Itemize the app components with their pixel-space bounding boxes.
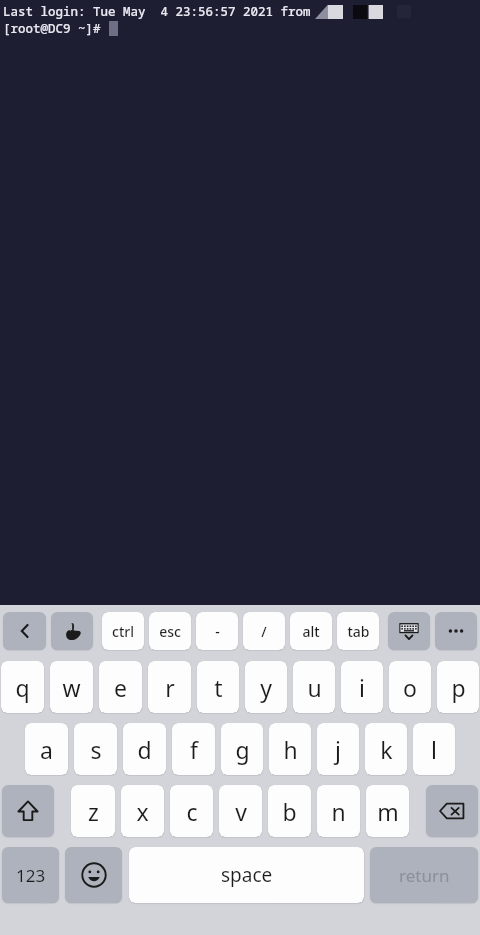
staticText: t <box>214 672 223 703</box>
staticText: w <box>62 672 81 703</box>
staticText: alt <box>302 622 320 641</box>
button[interactable]: d <box>123 723 166 775</box>
button[interactable]: v <box>219 785 262 837</box>
staticText: y <box>260 672 272 703</box>
staticText: i <box>359 672 365 703</box>
staticText: k <box>380 734 393 765</box>
button[interactable]: esc <box>149 612 191 650</box>
button[interactable]: r <box>148 661 191 713</box>
staticText: o <box>403 672 417 703</box>
staticText: return <box>399 864 450 887</box>
staticText: e <box>114 672 127 703</box>
button[interactable]: l <box>413 723 455 775</box>
button[interactable]: Back <box>3 612 46 650</box>
staticText: space <box>221 862 273 888</box>
staticText: [root@DC9 ~]# <box>3 20 109 37</box>
button[interactable]: space <box>129 847 364 903</box>
button[interactable]: Hide keyboard <box>388 612 430 650</box>
staticText: a <box>40 734 53 765</box>
staticText: j <box>335 734 341 765</box>
button[interactable]: h <box>269 723 311 775</box>
button[interactable]: t <box>197 661 239 713</box>
staticText: n <box>331 796 346 827</box>
button[interactable]: f <box>172 723 215 775</box>
staticText: - <box>215 622 220 641</box>
button[interactable]: Touch pointer <box>51 612 93 650</box>
staticText: ctrl <box>112 622 134 641</box>
button[interactable]: g <box>221 723 263 775</box>
staticText: f <box>190 734 198 765</box>
staticText: p <box>451 672 466 703</box>
staticText: m <box>377 796 399 827</box>
staticText: esc <box>159 622 181 641</box>
staticText: r <box>165 672 175 703</box>
button[interactable]: i <box>341 661 383 713</box>
staticText: 123 <box>16 864 46 887</box>
button[interactable]: b <box>268 785 311 837</box>
staticText: v <box>235 796 247 827</box>
button[interactable]: k <box>365 723 407 775</box>
button[interactable]: return <box>370 847 478 903</box>
button[interactable]: Backspace <box>426 785 478 837</box>
staticText: s <box>90 734 102 765</box>
button[interactable]: w <box>50 661 93 713</box>
staticText: b <box>282 796 297 827</box>
button[interactable]: 123 <box>2 847 59 903</box>
button[interactable]: Shift <box>2 785 54 837</box>
staticText: c <box>186 796 198 827</box>
button[interactable]: Emoji <box>65 847 122 903</box>
button[interactable]: y <box>245 661 287 713</box>
button[interactable]: e <box>99 661 142 713</box>
button[interactable]: m <box>366 785 409 837</box>
button[interactable]: o <box>389 661 431 713</box>
button[interactable]: x <box>121 785 164 837</box>
staticText: z <box>88 796 99 827</box>
button[interactable]: u <box>293 661 335 713</box>
button[interactable]: n <box>317 785 360 837</box>
button[interactable]: tab <box>337 612 379 650</box>
button[interactable]: - <box>196 612 238 650</box>
staticText: g <box>235 734 250 765</box>
staticText: d <box>137 734 152 765</box>
staticText: l <box>431 734 437 765</box>
button[interactable]: s <box>74 723 117 775</box>
button[interactable]: j <box>317 723 359 775</box>
button[interactable]: z <box>71 785 115 837</box>
staticText: q <box>15 672 30 703</box>
button[interactable]: c <box>170 785 213 837</box>
button[interactable]: ctrl <box>102 612 144 650</box>
staticText: u <box>307 672 322 703</box>
button[interactable]: q <box>1 661 44 713</box>
staticText: Last login: Tue May 4 23:56:57 2021 from <box>3 3 311 20</box>
button[interactable]: / <box>243 612 285 650</box>
staticText: tab <box>347 622 370 641</box>
button[interactable]: More options <box>435 612 477 650</box>
staticText: / <box>261 622 267 641</box>
staticText: h <box>283 734 298 765</box>
staticText: x <box>136 796 149 827</box>
button[interactable]: alt <box>290 612 332 650</box>
button[interactable]: p <box>437 661 479 713</box>
button[interactable]: a <box>25 723 68 775</box>
